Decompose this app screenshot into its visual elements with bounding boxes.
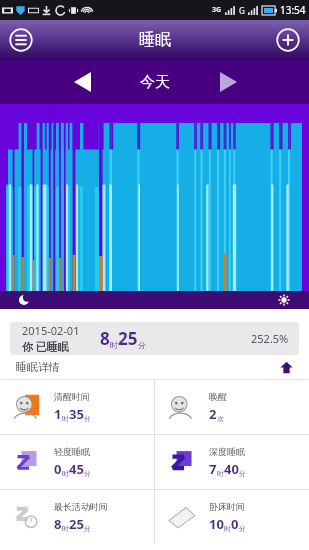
staticText: 252.5% xyxy=(251,331,289,346)
staticText: 时 xyxy=(217,469,224,478)
staticText: 今天 xyxy=(140,73,170,92)
staticText: 35 xyxy=(69,405,84,423)
staticText: 13:54 xyxy=(280,3,306,17)
button[interactable]: 深度睡眠 xyxy=(155,435,309,489)
staticText: 时 xyxy=(224,524,231,533)
button[interactable]: 睡眠详情 xyxy=(0,355,309,379)
staticText: G xyxy=(239,5,245,16)
staticText: 时 xyxy=(110,340,118,350)
button[interactable]: Add xyxy=(272,24,304,56)
staticText: 1 xyxy=(54,405,62,423)
staticText: 10 xyxy=(209,515,224,533)
staticText: 0 xyxy=(54,460,62,478)
staticText: 8 xyxy=(100,327,110,350)
staticText: 你 已睡眠 xyxy=(22,339,69,354)
staticText: 睡眠详情 xyxy=(16,360,60,374)
button[interactable]: 最长活动时间 xyxy=(0,490,154,544)
staticText: 睡眠 xyxy=(139,30,171,50)
staticText: 0 xyxy=(231,515,239,533)
staticText: 唤醒 xyxy=(209,391,227,402)
staticText: 清醒时间 xyxy=(54,391,90,402)
other: Sleep start xyxy=(19,295,29,305)
staticText: 40 xyxy=(224,460,239,478)
staticText: 分 xyxy=(239,524,246,533)
other: Wake time xyxy=(278,294,290,306)
staticText: 分 xyxy=(239,469,246,478)
button[interactable]: 轻度睡眠 xyxy=(0,435,154,489)
staticText: 8 xyxy=(54,515,62,533)
staticText: 分 xyxy=(84,524,91,533)
staticText: 分 xyxy=(138,340,146,350)
staticText: 分 xyxy=(84,469,91,478)
staticText: 7 xyxy=(209,460,217,478)
button[interactable]: Menu xyxy=(5,24,37,56)
staticText: 深度睡眠 xyxy=(209,446,245,457)
staticText: 3G xyxy=(212,5,222,15)
staticText: 时 xyxy=(62,414,69,423)
staticText: 卧床时间 xyxy=(209,501,245,512)
button[interactable]: 清醒时间 xyxy=(0,380,154,434)
staticText: 25 xyxy=(118,327,138,350)
staticText: 2015-02-01 xyxy=(22,323,80,338)
button[interactable]: 唤醒 xyxy=(155,380,309,434)
staticText: 次 xyxy=(217,414,224,423)
staticText: 时 xyxy=(62,524,69,533)
staticText: 25 xyxy=(69,515,84,533)
staticText: 最长活动时间 xyxy=(54,501,108,512)
button[interactable]: Previous day xyxy=(60,60,104,104)
staticText: 轻度睡眠 xyxy=(54,446,90,457)
staticText: 2 xyxy=(209,405,217,423)
staticText: 时 xyxy=(62,469,69,478)
button[interactable]: 今天 xyxy=(104,60,206,104)
button[interactable]: 2015-02-01 xyxy=(10,322,299,355)
button[interactable]: Next day xyxy=(206,60,250,104)
staticText: 分 xyxy=(84,414,91,423)
button[interactable]: 卧床时间 xyxy=(155,490,309,544)
staticText: 45 xyxy=(69,460,84,478)
